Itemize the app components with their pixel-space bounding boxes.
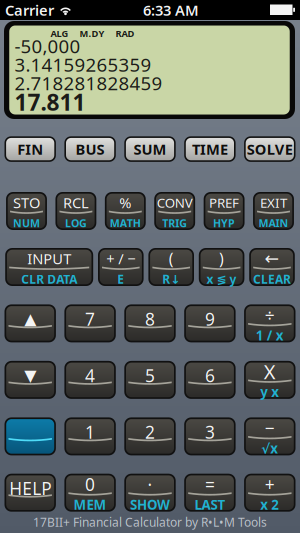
button[interactable]: 7: [64, 304, 116, 342]
button[interactable]: + / −: [98, 248, 144, 286]
staticText: PREF: [209, 194, 239, 211]
button[interactable]: 6: [184, 361, 236, 399]
staticText: EXIT: [260, 194, 287, 211]
staticText: HYP: [213, 216, 235, 230]
staticText: Carrier: [5, 0, 54, 20]
button[interactable]: =: [184, 474, 236, 512]
button[interactable]: −: [244, 417, 295, 455]
staticText: STO: [13, 193, 40, 212]
staticText: 1 / x: [256, 326, 284, 344]
button[interactable]: 2: [124, 417, 176, 455]
staticText: MEM: [74, 496, 107, 513]
staticText: SHOW: [130, 496, 170, 513]
staticText: BUS: [76, 139, 105, 159]
button[interactable]: CONV: [154, 192, 195, 230]
staticText: 8: [145, 307, 155, 330]
button[interactable]: Backspace: [249, 248, 295, 286]
staticText: RCL: [63, 193, 89, 212]
button[interactable]: Shift: [4, 417, 56, 455]
staticText: x 2: [260, 496, 279, 513]
button[interactable]: INPUT: [5, 248, 93, 286]
button[interactable]: %: [105, 192, 146, 230]
staticText: + / −: [106, 249, 135, 268]
button[interactable]: RCL: [55, 192, 96, 230]
staticText: SOLVE: [247, 139, 293, 159]
staticText: SUM: [133, 139, 166, 159]
staticText: +: [265, 473, 275, 496]
button[interactable]: 8: [124, 304, 176, 342]
staticText: ▼: [24, 366, 36, 384]
button[interactable]: (: [148, 248, 194, 286]
staticText: CLR DATA: [21, 271, 77, 287]
staticText: INPUT: [27, 249, 71, 268]
button[interactable]: X: [244, 361, 295, 399]
staticText: LAST: [194, 496, 225, 513]
staticText: NUM: [13, 216, 40, 230]
staticText: 7: [85, 307, 95, 330]
staticText: X: [264, 358, 276, 385]
staticText: 2: [145, 420, 155, 443]
button[interactable]: 9: [184, 304, 236, 342]
button[interactable]: 4: [64, 361, 116, 399]
button[interactable]: PREF: [204, 192, 245, 230]
staticText: R↓: [162, 271, 180, 287]
staticText: -50,000: [14, 34, 80, 58]
staticText: HELP: [9, 477, 51, 500]
staticText: y x: [260, 383, 279, 401]
button[interactable]: ): [199, 248, 244, 286]
button[interactable]: Scroll up: [4, 304, 56, 342]
staticText: MAIN: [258, 216, 288, 230]
staticText: E: [117, 271, 124, 287]
staticText: 17BII+ Financial Calculator by R•L•M Too…: [33, 514, 267, 530]
staticText: ÷: [265, 303, 275, 326]
button[interactable]: EXIT: [253, 192, 294, 230]
staticText: ▲: [24, 310, 36, 328]
staticText: ): [219, 248, 224, 269]
button[interactable]: FIN: [4, 136, 56, 162]
button[interactable]: HELP: [4, 474, 56, 512]
staticText: ALG: [50, 27, 68, 40]
staticText: %: [119, 193, 131, 212]
button[interactable]: ÷: [244, 304, 295, 342]
staticText: 6:33 AM: [143, 0, 199, 20]
button[interactable]: SOLVE: [244, 136, 295, 162]
button[interactable]: ·: [124, 474, 176, 512]
button[interactable]: BUS: [64, 136, 116, 162]
staticText: −: [265, 416, 275, 439]
button[interactable]: STO: [6, 192, 47, 230]
staticText: 4: [85, 364, 95, 387]
staticText: CONV: [157, 194, 193, 211]
button[interactable]: 0: [64, 474, 116, 512]
button[interactable]: SUM: [124, 136, 176, 162]
button[interactable]: 1: [64, 417, 116, 455]
button[interactable]: 5: [124, 361, 176, 399]
button[interactable]: 3: [184, 417, 236, 455]
staticText: x ≶ y: [207, 271, 237, 287]
staticText: MATH: [110, 216, 141, 230]
staticText: 6: [205, 364, 215, 387]
staticText: RAD: [115, 27, 134, 40]
staticText: 9: [205, 307, 215, 330]
staticText: 17.811: [14, 87, 85, 117]
staticText: √x: [261, 439, 278, 457]
staticText: ←: [264, 249, 279, 268]
staticText: 2.718281828459: [14, 71, 162, 95]
button[interactable]: Scroll down: [4, 361, 56, 399]
staticText: M.DY: [79, 27, 104, 40]
staticText: TIME: [192, 139, 228, 159]
staticText: CLEAR: [253, 271, 291, 287]
staticText: 3: [205, 420, 215, 443]
staticText: 5: [145, 364, 155, 387]
button[interactable]: TIME: [184, 136, 236, 162]
staticText: 1: [85, 420, 95, 443]
staticText: ·: [147, 473, 152, 496]
staticText: 3.14159265359: [14, 52, 151, 77]
staticText: LOG: [65, 216, 87, 230]
staticText: (: [169, 248, 174, 269]
staticText: FIN: [17, 139, 43, 159]
staticText: =: [205, 473, 215, 496]
button[interactable]: +: [244, 474, 295, 512]
staticText: TRIG: [162, 216, 187, 230]
staticText: 0: [85, 473, 95, 496]
